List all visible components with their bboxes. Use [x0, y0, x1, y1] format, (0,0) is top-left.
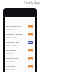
staticText: Grocery list [6, 40, 20, 43]
staticText: today 12:00 [6, 44, 17, 47]
staticText: Morning run [6, 24, 21, 27]
staticText: today 10:30 [6, 36, 17, 39]
button[interactable]: Grocery list [5, 40, 35, 48]
staticText: Taskly App [24, 1, 40, 5]
staticText: Fit [29, 26, 32, 28]
staticText: tue 9:00 [6, 52, 14, 55]
staticText: today 7:00 [6, 28, 16, 31]
staticText: Bill [29, 66, 32, 68]
button[interactable]: Morning run [5, 24, 35, 32]
staticText: Work [28, 50, 33, 52]
staticText: Life [29, 58, 33, 60]
button[interactable]: Read book [5, 56, 35, 64]
staticText: wed 18:00 [6, 68, 16, 71]
staticText: tue 20:00 [6, 60, 15, 63]
staticText: Design review [6, 32, 23, 35]
button[interactable]: Pay bills [5, 64, 35, 72]
staticText: Read book [6, 56, 19, 59]
staticText: Work [28, 34, 33, 36]
staticText: Home [28, 41, 33, 44]
button[interactable]: Standup [5, 48, 35, 56]
button[interactable]: Design review [5, 32, 35, 40]
staticText: Pay bills [6, 64, 16, 67]
staticText: Standup [6, 48, 16, 51]
